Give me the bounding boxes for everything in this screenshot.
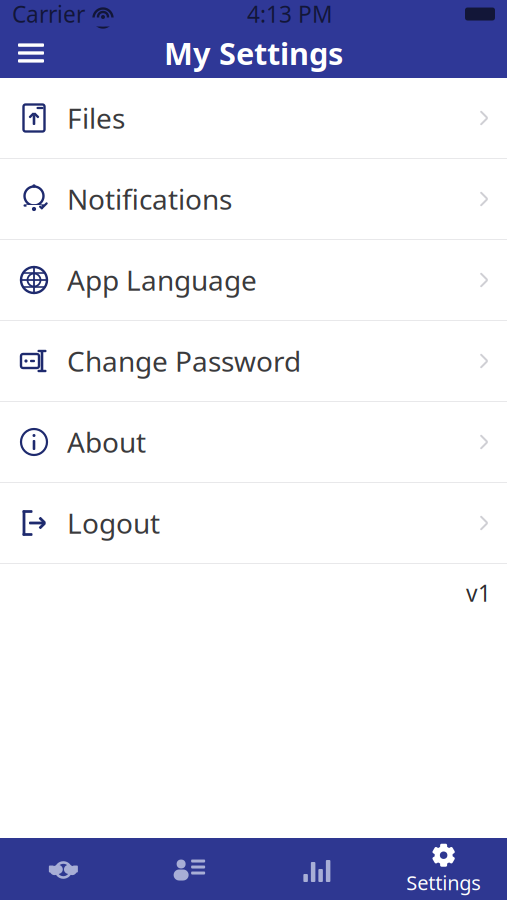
staticText: v1: [466, 578, 491, 608]
staticText: About: [67, 423, 146, 461]
staticText: Settings: [406, 869, 481, 896]
staticText: Notifications: [67, 180, 232, 218]
button[interactable]: About: [0, 402, 507, 483]
button[interactable]: Logout: [0, 483, 507, 564]
staticText: Carrier: [12, 0, 85, 29]
staticText: 4:13 PM: [247, 0, 333, 29]
staticText: My Settings: [164, 33, 343, 73]
staticText: Files: [67, 99, 125, 137]
button[interactable]: Deals: [0, 838, 127, 900]
button[interactable]: Contacts: [127, 838, 254, 900]
button[interactable]: Change Password: [0, 321, 507, 402]
staticText: App Language: [67, 261, 257, 299]
staticText: Change Password: [67, 342, 301, 380]
button[interactable]: Notifications: [0, 159, 507, 240]
button[interactable]: Reports: [253, 838, 380, 900]
button[interactable]: App Language: [0, 240, 507, 321]
button[interactable]: Menu: [6, 30, 56, 76]
staticText: Logout: [67, 504, 160, 542]
button[interactable]: Settings: [380, 838, 507, 900]
button[interactable]: Files: [0, 78, 507, 159]
